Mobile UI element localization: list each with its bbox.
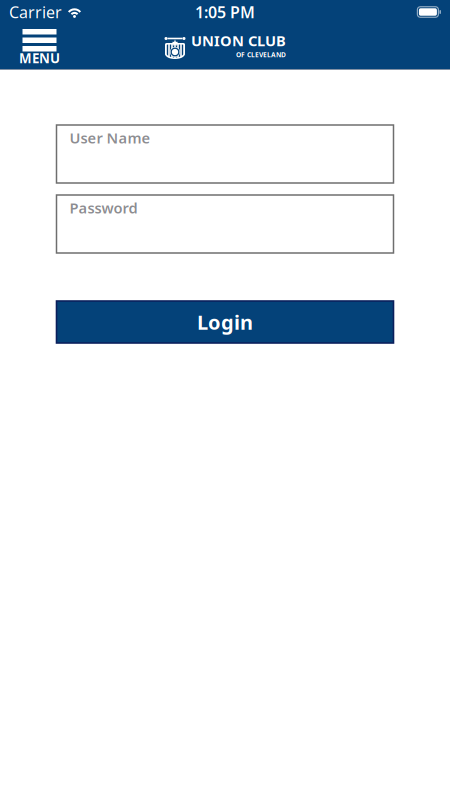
button[interactable]: User Name (56, 125, 393, 183)
button[interactable]: Menu (16, 26, 63, 68)
staticText: Carrier (9, 1, 62, 23)
staticText: OF CLEVELAND (236, 50, 286, 59)
staticText: MENU (19, 49, 60, 67)
staticText: Password (69, 198, 137, 217)
button[interactable]: Login (56, 301, 393, 343)
button[interactable]: Password (56, 195, 393, 253)
staticText: 1:05 PM (195, 1, 255, 23)
staticText: User Name (69, 128, 150, 147)
staticText: Login (197, 309, 253, 335)
staticText: UNION CLUB (191, 31, 286, 50)
